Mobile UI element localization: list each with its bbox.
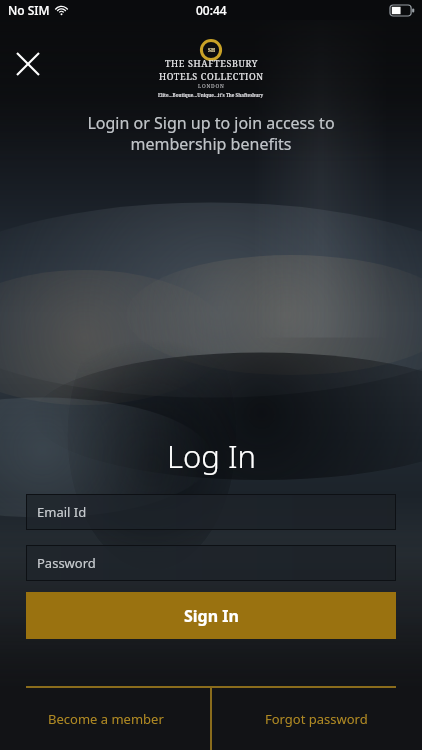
- button[interactable]: Become a member: [0, 688, 211, 750]
- staticText: Email Id: [37, 503, 87, 521]
- staticText: HOTELS COLLECTION: [159, 70, 264, 82]
- button[interactable]: Sign In: [26, 592, 396, 639]
- staticText: LONDON: [198, 83, 225, 90]
- staticText: THE SHAFTESBURY: [165, 57, 258, 69]
- staticText: Sign In: [184, 605, 239, 627]
- button[interactable]: Password: [26, 545, 396, 581]
- staticText: Become a member: [48, 710, 164, 728]
- button[interactable]: Forgot password: [211, 688, 422, 750]
- staticText: 00:44: [196, 2, 227, 18]
- button[interactable]: Close: [6, 42, 50, 86]
- staticText: Login or Sign up to join access to membe…: [0, 112, 422, 155]
- staticText: Password: [37, 554, 96, 572]
- staticText: Forgot password: [265, 710, 368, 728]
- staticText: SH: [208, 47, 215, 54]
- staticText: No SIM: [8, 2, 50, 18]
- button[interactable]: Email Id: [26, 494, 396, 530]
- staticText: Elite…Boutique…Unique…it's The Shaftesbu…: [158, 92, 264, 98]
- staticText: Log In: [167, 435, 256, 477]
